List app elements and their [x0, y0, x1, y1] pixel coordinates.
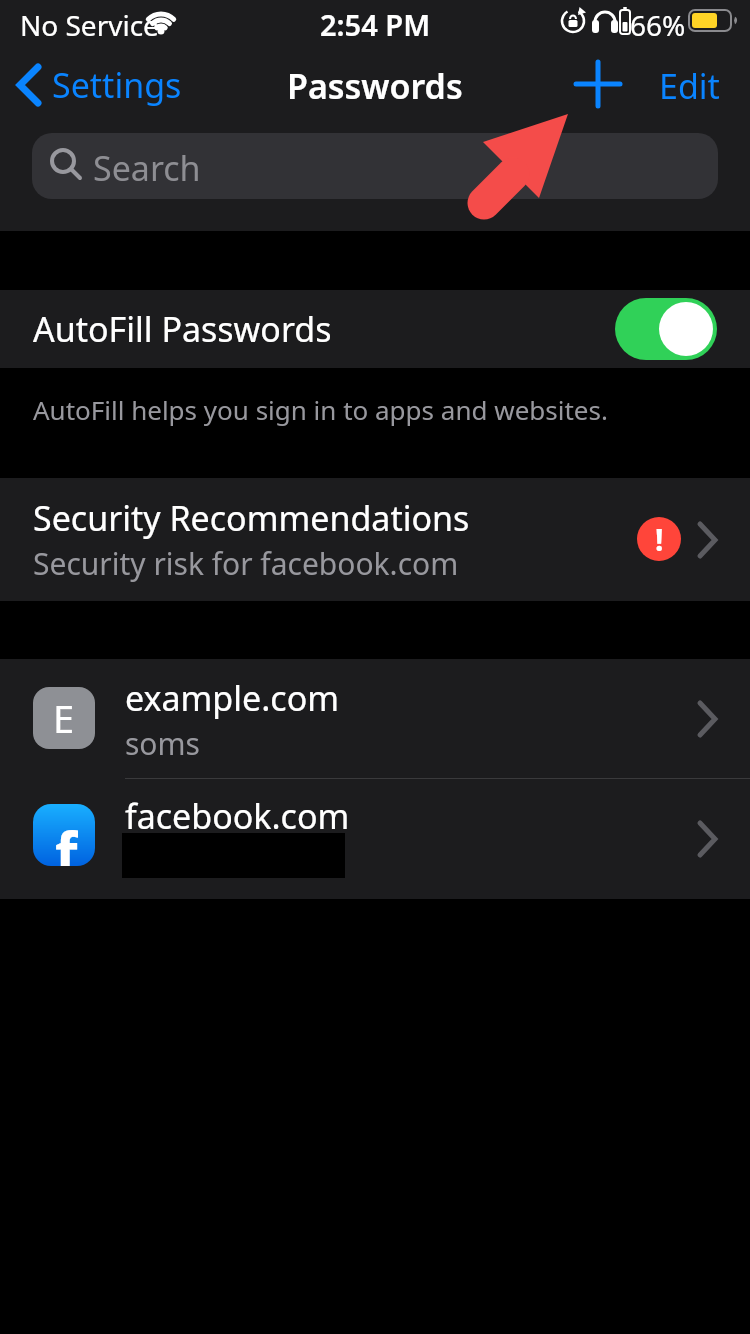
button[interactable]: Edit	[648, 56, 709, 102]
button[interactable]	[570, 56, 626, 112]
staticText: AutoFill helps you sign in to apps and w…	[33, 392, 608, 427]
staticText: facebook.com	[125, 793, 350, 839]
staticText: AutoFill Passwords	[33, 306, 332, 352]
button[interactable]: Security Recommendations	[0, 478, 750, 601]
staticText: Settings	[52, 62, 182, 108]
staticText: 66%	[630, 6, 686, 44]
staticText: f	[55, 812, 78, 866]
button[interactable]: E	[0, 659, 750, 779]
staticText: soms	[125, 723, 200, 764]
staticText: E	[53, 692, 75, 744]
staticText: Security Recommendations	[33, 495, 470, 541]
staticText: 2:54 PM	[320, 5, 431, 44]
staticText: example.com	[125, 675, 339, 721]
staticText: Security risk for facebook.com	[33, 543, 459, 584]
staticText: No Service	[20, 6, 159, 44]
staticText: Edit	[659, 63, 720, 109]
button[interactable]	[615, 298, 717, 360]
staticText: !	[655, 519, 664, 560]
staticText: Passwords	[287, 63, 463, 109]
button[interactable]: Search	[32, 133, 718, 199]
button[interactable]: Settings	[16, 62, 182, 108]
staticText: Search	[93, 145, 201, 191]
button[interactable]: f	[0, 779, 750, 899]
button[interactable]: AutoFill Passwords	[0, 290, 750, 368]
